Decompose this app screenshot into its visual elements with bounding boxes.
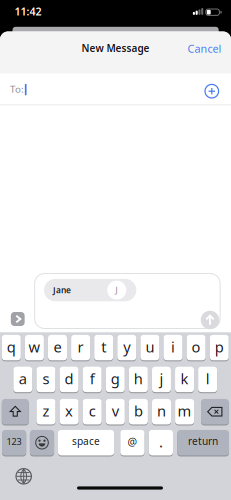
staticText: s xyxy=(42,369,49,389)
button[interactable]: e xyxy=(48,335,67,360)
button[interactable]: l xyxy=(198,367,217,392)
staticText: z xyxy=(42,401,49,421)
button[interactable]: z xyxy=(36,399,55,424)
button[interactable]: j xyxy=(152,367,171,392)
button[interactable]: p xyxy=(210,335,229,360)
staticText: i xyxy=(171,337,175,357)
staticText: @ xyxy=(127,434,137,449)
button[interactable]: Next keyboard xyxy=(16,469,31,484)
staticText: 123 xyxy=(7,435,22,448)
staticText: q xyxy=(7,337,16,357)
button[interactable]: Add Contact xyxy=(205,84,219,98)
button[interactable]: Expand app strip xyxy=(11,312,25,326)
button[interactable]: t xyxy=(94,335,113,360)
button[interactable]: To xyxy=(0,74,231,106)
staticText: r xyxy=(78,337,84,357)
staticText: c xyxy=(89,401,96,421)
button[interactable]: o xyxy=(187,335,206,360)
button[interactable]: f xyxy=(83,367,102,392)
button[interactable]: i xyxy=(163,335,182,360)
staticText: m xyxy=(178,401,192,421)
staticText: n xyxy=(157,401,166,421)
staticText: space xyxy=(72,434,100,448)
staticText: Jane xyxy=(53,284,71,296)
button[interactable]: k xyxy=(175,367,194,392)
staticText: . xyxy=(159,432,163,452)
staticText: b xyxy=(134,401,143,421)
button[interactable]: return xyxy=(177,430,229,455)
staticText: a xyxy=(19,369,27,389)
staticText: 11:42 xyxy=(14,4,41,19)
button[interactable]: Send xyxy=(201,311,219,329)
staticText: u xyxy=(145,337,154,357)
button[interactable]: c xyxy=(83,399,102,424)
staticText: Cancel xyxy=(187,41,221,56)
staticText: g xyxy=(111,369,120,389)
staticText: v xyxy=(112,401,119,421)
staticText: x xyxy=(65,401,73,421)
button[interactable]: Cancel xyxy=(187,41,221,56)
button[interactable]: Shift xyxy=(2,399,29,424)
button[interactable]: Emoji xyxy=(30,430,54,455)
button[interactable]: b xyxy=(129,399,148,424)
button[interactable]: s xyxy=(36,367,55,392)
button[interactable]: x xyxy=(60,399,79,424)
button[interactable]: @ xyxy=(120,430,144,455)
button[interactable]: . xyxy=(149,430,173,455)
button[interactable]: u xyxy=(140,335,159,360)
staticText: e xyxy=(53,337,61,357)
button[interactable]: m xyxy=(175,399,194,424)
staticText: h xyxy=(134,369,143,389)
button[interactable]: r xyxy=(71,335,90,360)
button[interactable]: space xyxy=(58,430,114,455)
staticText: l xyxy=(206,369,210,389)
button[interactable]: Jane xyxy=(44,279,136,301)
button[interactable]: q xyxy=(2,335,21,360)
staticText: j xyxy=(159,369,163,389)
staticText: o xyxy=(192,337,201,357)
button[interactable]: d xyxy=(60,367,79,392)
staticText: return xyxy=(188,434,218,448)
button[interactable]: a xyxy=(13,367,32,392)
staticText: d xyxy=(65,369,74,389)
staticText: w xyxy=(28,337,40,357)
button[interactable]: h xyxy=(129,367,148,392)
button[interactable]: Numbers xyxy=(2,430,26,455)
staticText: To: xyxy=(10,82,24,96)
button[interactable]: v xyxy=(106,399,125,424)
button[interactable]: Message xyxy=(34,273,221,329)
staticText: y xyxy=(123,337,130,357)
staticText: t xyxy=(101,337,106,357)
button[interactable]: w xyxy=(25,335,44,360)
button[interactable]: y xyxy=(117,335,136,360)
staticText: p xyxy=(215,337,224,357)
button[interactable]: Delete xyxy=(201,399,229,424)
button[interactable]: g xyxy=(106,367,125,392)
button[interactable]: n xyxy=(152,399,171,424)
staticText: f xyxy=(90,369,95,389)
staticText: k xyxy=(181,369,189,389)
staticText: New Message xyxy=(81,41,149,55)
staticText: J xyxy=(115,284,118,297)
